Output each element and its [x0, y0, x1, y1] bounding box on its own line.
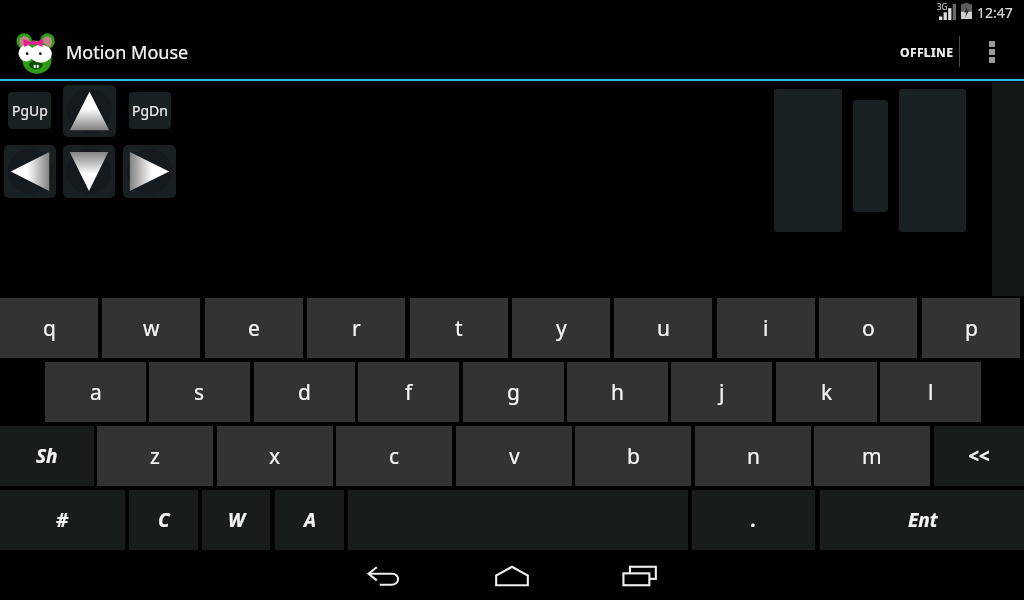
button[interactable]: Down	[63, 145, 115, 198]
button[interactable]: a	[45, 362, 146, 422]
button[interactable]: g	[463, 362, 564, 422]
staticText: i	[763, 314, 769, 343]
staticText: b	[627, 442, 640, 471]
button[interactable]: x	[217, 426, 333, 486]
staticText: e	[248, 314, 260, 343]
staticText: g	[507, 378, 520, 407]
staticText: 12:47	[977, 3, 1013, 22]
button[interactable]: k	[776, 362, 877, 422]
staticText: k	[821, 378, 833, 407]
staticText: Motion Mouse	[66, 40, 189, 65]
button[interactable]: #	[0, 490, 125, 550]
staticText: r	[352, 314, 361, 343]
staticText: o	[862, 314, 875, 343]
staticText: d	[298, 378, 311, 407]
staticText: v	[509, 442, 520, 471]
staticText: z	[150, 442, 160, 471]
staticText: OFFLINE	[900, 44, 954, 60]
button[interactable]: Right	[123, 145, 176, 198]
staticText: C	[158, 507, 170, 533]
button[interactable]: u	[614, 298, 712, 358]
button[interactable]: PgUp	[8, 92, 51, 129]
button[interactable]: OFFLINE	[886, 25, 968, 78]
button[interactable]: h	[567, 362, 668, 422]
staticText: f	[405, 378, 413, 407]
button[interactable]: n	[695, 426, 811, 486]
staticText: W	[228, 507, 245, 533]
button[interactable]: f	[358, 362, 459, 422]
button[interactable]: More options	[970, 25, 1014, 78]
staticText: j	[719, 378, 725, 407]
button[interactable]: Ent	[820, 490, 1024, 550]
button[interactable]: s	[149, 362, 250, 422]
staticText: .	[751, 507, 757, 533]
button[interactable]: W	[202, 490, 270, 550]
button[interactable]: z	[97, 426, 213, 486]
button[interactable]: j	[671, 362, 772, 422]
staticText: <<	[968, 443, 990, 469]
staticText: t	[455, 314, 463, 343]
staticText: w	[143, 314, 160, 343]
button[interactable]: Motion Mouse	[0, 25, 205, 80]
staticText: PgUp	[12, 101, 48, 120]
button[interactable]: Recents	[604, 552, 676, 600]
button[interactable]: Up	[63, 85, 116, 137]
staticText: a	[90, 378, 102, 407]
button[interactable]: PgDn	[129, 92, 171, 129]
staticText: #	[56, 507, 69, 533]
staticText: s	[194, 378, 205, 407]
staticText: A	[304, 507, 316, 533]
staticText: y	[556, 314, 567, 343]
button[interactable]: q	[0, 298, 98, 358]
button[interactable]: .	[692, 490, 815, 550]
staticText: 3G	[937, 1, 948, 12]
staticText: x	[269, 442, 281, 471]
button[interactable]: l	[880, 362, 981, 422]
staticText: q	[43, 314, 56, 343]
button[interactable]: o	[819, 298, 917, 358]
button[interactable]: t	[410, 298, 508, 358]
button[interactable]: r	[307, 298, 405, 358]
button[interactable]: Back	[348, 552, 420, 600]
button[interactable]: b	[575, 426, 691, 486]
button[interactable]: Sh	[0, 426, 94, 486]
staticText: u	[657, 314, 670, 343]
button[interactable]: w	[102, 298, 200, 358]
button[interactable]: d	[254, 362, 355, 422]
staticText: Sh	[36, 443, 58, 469]
button[interactable]: i	[717, 298, 815, 358]
button[interactable]: v	[456, 426, 572, 486]
button[interactable]: e	[205, 298, 303, 358]
staticText: p	[965, 314, 978, 343]
staticText: c	[389, 442, 400, 471]
button[interactable]: C	[129, 490, 198, 550]
button[interactable]: m	[814, 426, 930, 486]
button[interactable]: Left	[4, 145, 56, 198]
staticText: Ent	[908, 507, 938, 533]
staticText: n	[747, 442, 760, 471]
button[interactable]: Home	[476, 552, 548, 600]
button[interactable]: <<	[934, 426, 1024, 486]
button[interactable]: p	[922, 298, 1020, 358]
staticText: PgDn	[132, 101, 168, 120]
button[interactable]: c	[336, 426, 452, 486]
staticText: l	[928, 378, 934, 407]
button[interactable]: A	[275, 490, 344, 550]
staticText: m	[862, 442, 882, 471]
button[interactable]: y	[512, 298, 610, 358]
staticText: h	[611, 378, 624, 407]
